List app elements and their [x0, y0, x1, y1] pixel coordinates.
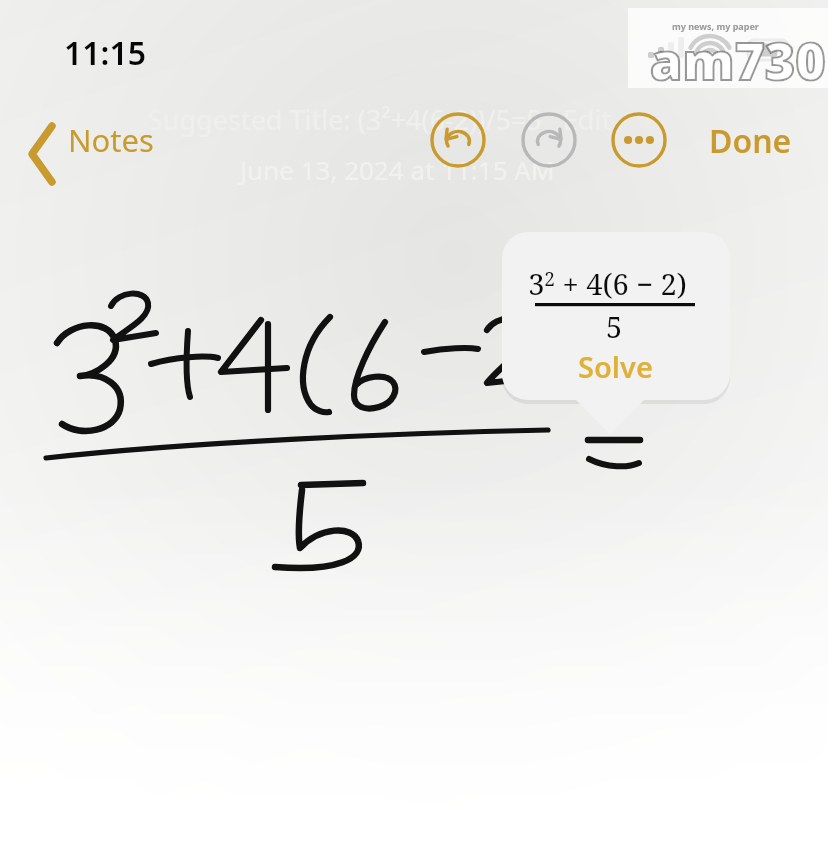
staticText: 5	[606, 307, 623, 346]
button[interactable]: Notes	[18, 110, 188, 170]
staticText: am730	[650, 24, 826, 95]
staticText: 11:15	[64, 31, 147, 75]
staticText: Solve	[578, 347, 653, 386]
button[interactable]: Solve	[556, 344, 674, 388]
staticText: am730	[650, 24, 826, 95]
button[interactable]: Done	[694, 115, 806, 167]
button[interactable]: More options	[611, 112, 667, 168]
button[interactable]: Redo	[521, 112, 577, 168]
button[interactable]: Undo	[430, 112, 486, 168]
staticText: Done	[709, 119, 792, 163]
staticText: my news, my paper	[672, 20, 759, 32]
staticText: June 13, 2024 at 11:15 AM	[240, 152, 555, 187]
staticText: Suggested Title: (3²+4(6-2))/5=5 Edit	[148, 101, 612, 138]
staticText: Notes	[68, 119, 154, 161]
staticText: 32 + 4(6 − 2)	[528, 264, 687, 303]
